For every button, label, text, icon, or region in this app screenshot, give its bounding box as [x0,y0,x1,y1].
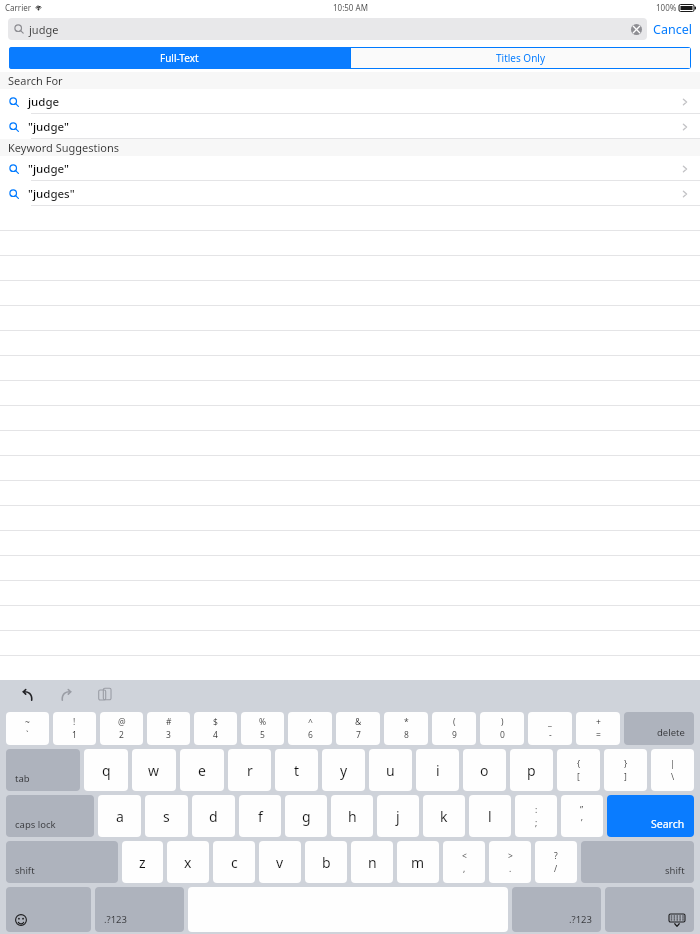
staticText: ; [535,817,538,829]
button[interactable]: : [515,795,557,837]
button[interactable]: u [369,749,412,791]
staticText: a [116,807,124,826]
button[interactable]: _ [528,712,572,745]
button[interactable]: + [576,712,620,745]
button[interactable]: e [180,749,224,791]
button[interactable]: $ [194,712,237,745]
staticText: ` [26,729,29,741]
button[interactable]: shift [6,841,118,883]
button[interactable]: } [604,749,647,791]
staticText: @ [118,716,126,728]
button[interactable]: l [469,795,511,837]
button[interactable]: h [331,795,373,837]
button[interactable]: judge [0,89,700,114]
button[interactable]: c [213,841,255,883]
button[interactable]: { [557,749,600,791]
button[interactable]: g [285,795,327,837]
button[interactable]: & [336,712,380,745]
button[interactable]: ( [432,712,476,745]
button[interactable]: ) [480,712,524,745]
button[interactable]: > [489,841,531,883]
staticText: 0 [500,729,505,741]
staticText: , [463,863,466,875]
staticText: / [554,863,558,875]
button[interactable]: i [416,749,459,791]
button[interactable]: f [239,795,281,837]
button[interactable]: "judges" [0,181,700,206]
staticText: < [462,850,467,862]
button[interactable]: Hide keyboard [605,887,694,932]
button[interactable]: q [84,749,128,791]
staticText: x [184,853,192,872]
button[interactable]: judge [8,18,647,40]
button[interactable]: Search [607,795,694,837]
button[interactable]: .?123 [512,887,601,932]
button[interactable]: tab [6,749,80,791]
button[interactable]: o [463,749,506,791]
staticText: > [508,850,513,862]
staticText: g [302,807,311,826]
button[interactable]: ! [53,712,96,745]
staticText: ! [73,716,76,728]
staticText: tab [15,772,30,785]
button[interactable]: r [228,749,271,791]
button[interactable]: y [322,749,365,791]
button[interactable]: % [241,712,284,745]
button[interactable]: .?123 [95,887,184,932]
button[interactable]: b [305,841,347,883]
button[interactable]: Cancel [653,21,692,38]
staticText: 100% [656,2,677,13]
staticText: shift [15,864,35,877]
button[interactable]: delete [624,712,694,745]
staticText: .?123 [569,913,592,926]
button[interactable]: # [147,712,190,745]
staticText: judge [28,94,679,110]
button[interactable]: Titles Only [351,48,690,68]
button[interactable]: z [122,841,163,883]
staticText: w [148,761,160,780]
staticText: { [577,758,581,770]
button[interactable]: Full-Text [9,47,350,69]
button[interactable]: | [651,749,694,791]
button[interactable]: ~ [6,712,49,745]
button[interactable]: Paste [92,682,118,708]
button[interactable]: ? [535,841,577,883]
staticText: = [596,729,601,741]
staticText: Carrier [5,2,32,13]
button[interactable]: shift [581,841,694,883]
button[interactable]: x [167,841,209,883]
button[interactable]: caps lock [6,795,94,837]
staticText: q [102,761,111,780]
button[interactable]: s [145,795,188,837]
staticText: Search For [8,73,63,88]
staticText: Search [651,817,685,831]
button[interactable]: "judge" [0,114,700,139]
button[interactable]: d [192,795,235,837]
button[interactable]: @ [100,712,143,745]
button[interactable]: < [443,841,485,883]
button[interactable]: * [384,712,428,745]
staticText: i [436,761,440,780]
button[interactable]: k [423,795,465,837]
staticText: 9 [452,729,457,741]
button[interactable]: w [132,749,176,791]
button[interactable]: n [351,841,393,883]
button[interactable]: Redo [53,682,79,708]
button[interactable]: Undo [14,682,40,708]
button[interactable]: p [510,749,553,791]
button[interactable]: ” [561,795,603,837]
button[interactable]: "judge" [0,156,700,181]
button[interactable]: m [397,841,439,883]
button[interactable]: a [98,795,141,837]
button[interactable]: Clear text [627,20,645,38]
button[interactable]: Emoji [6,887,91,932]
staticText: ( [453,716,456,728]
button[interactable]: v [259,841,301,883]
button[interactable]: j [377,795,419,837]
staticText: 7 [356,729,361,741]
staticText: 8 [404,729,409,741]
button[interactable]: t [275,749,318,791]
button[interactable]: ^ [288,712,332,745]
staticText: c [231,853,238,872]
